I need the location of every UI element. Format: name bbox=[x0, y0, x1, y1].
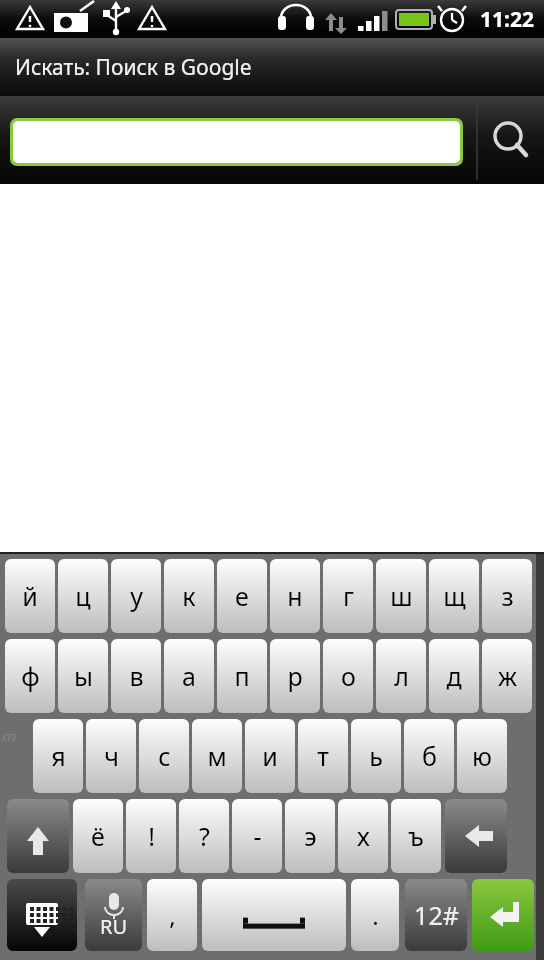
button[interactable]: й bbox=[5, 559, 55, 633]
staticText: ю bbox=[472, 739, 492, 773]
button[interactable]: у bbox=[111, 559, 161, 633]
button[interactable]: з bbox=[482, 559, 532, 633]
button[interactable]: ! bbox=[126, 799, 176, 873]
button[interactable]: Backspace bbox=[445, 799, 507, 873]
staticText: з bbox=[501, 579, 514, 613]
staticText: ъ bbox=[408, 819, 424, 853]
button[interactable]: ь bbox=[351, 719, 401, 793]
staticText: е bbox=[235, 579, 249, 613]
button[interactable]: ж bbox=[482, 639, 532, 713]
button[interactable]: н bbox=[270, 559, 320, 633]
button[interactable]: - bbox=[232, 799, 282, 873]
staticText: ф bbox=[21, 659, 40, 693]
staticText: м bbox=[207, 739, 227, 773]
button[interactable]: Shift bbox=[7, 799, 69, 873]
button[interactable]: щ bbox=[429, 559, 479, 633]
button[interactable]: ц bbox=[58, 559, 108, 633]
button[interactable]: я bbox=[33, 719, 83, 793]
staticText: , bbox=[169, 899, 176, 932]
staticText: у bbox=[130, 579, 143, 613]
staticText: ! bbox=[148, 819, 155, 853]
staticText: в bbox=[129, 659, 144, 693]
staticText: XT9 bbox=[2, 732, 16, 743]
staticText: 11:22 bbox=[480, 5, 534, 34]
staticText: г bbox=[343, 579, 354, 613]
button[interactable]: с bbox=[139, 719, 189, 793]
button[interactable]: и bbox=[245, 719, 295, 793]
button[interactable]: м bbox=[192, 719, 242, 793]
staticText: я bbox=[51, 739, 66, 773]
button[interactable]: е bbox=[217, 559, 267, 633]
button[interactable]: л bbox=[376, 639, 426, 713]
staticText: с bbox=[158, 739, 171, 773]
button[interactable]: г bbox=[323, 559, 373, 633]
staticText: ш bbox=[390, 579, 413, 613]
button[interactable]: т bbox=[298, 719, 348, 793]
staticText: и bbox=[262, 739, 278, 773]
staticText: к bbox=[182, 579, 196, 613]
staticText: RU bbox=[100, 913, 128, 940]
button[interactable]: 12# bbox=[405, 879, 467, 951]
button[interactable]: э bbox=[285, 799, 335, 873]
staticText: Искать: Поиск в Google bbox=[15, 53, 252, 82]
button[interactable]: в bbox=[111, 639, 161, 713]
button[interactable]: к bbox=[164, 559, 214, 633]
staticText: ь bbox=[369, 739, 383, 773]
button[interactable]: ы bbox=[58, 639, 108, 713]
staticText: ё bbox=[91, 819, 105, 853]
staticText: л bbox=[394, 659, 409, 693]
staticText: . bbox=[372, 899, 379, 932]
button[interactable]: Voice input RU bbox=[85, 879, 142, 951]
button[interactable]: Space bbox=[202, 879, 346, 951]
staticText: т bbox=[317, 739, 329, 773]
staticText: щ bbox=[443, 579, 466, 613]
button[interactable]: п bbox=[217, 639, 267, 713]
staticText: р bbox=[287, 659, 303, 693]
staticText: ы bbox=[74, 659, 93, 693]
staticText: о bbox=[341, 659, 356, 693]
button[interactable]: д bbox=[429, 639, 479, 713]
button[interactable]: Enter bbox=[472, 879, 534, 951]
staticText: п bbox=[234, 659, 250, 693]
button[interactable]: б bbox=[404, 719, 454, 793]
staticText: э bbox=[304, 819, 317, 853]
button[interactable]: о bbox=[323, 639, 373, 713]
staticText: ? bbox=[199, 819, 210, 853]
staticText: ж bbox=[498, 659, 517, 693]
button[interactable]: ш bbox=[376, 559, 426, 633]
staticText: н bbox=[287, 579, 303, 613]
button[interactable]: , bbox=[147, 879, 197, 951]
staticText: ц bbox=[75, 579, 91, 613]
staticText: 12# bbox=[414, 898, 459, 932]
staticText: а bbox=[182, 659, 196, 693]
button[interactable] bbox=[13, 121, 460, 163]
staticText: - bbox=[253, 819, 262, 853]
button[interactable]: ё bbox=[73, 799, 123, 873]
staticText: д bbox=[446, 659, 462, 693]
staticText: б bbox=[422, 739, 437, 773]
button[interactable]: ф bbox=[5, 639, 55, 713]
button[interactable]: а bbox=[164, 639, 214, 713]
staticText: ч bbox=[104, 739, 119, 773]
staticText: х bbox=[357, 819, 370, 853]
button[interactable]: ю bbox=[457, 719, 507, 793]
button[interactable]: Hide keyboard bbox=[7, 879, 77, 951]
button[interactable]: . bbox=[351, 879, 399, 951]
staticText: й bbox=[22, 579, 38, 613]
button[interactable]: ч bbox=[86, 719, 136, 793]
button[interactable]: ? bbox=[179, 799, 229, 873]
button[interactable]: х bbox=[338, 799, 388, 873]
button[interactable]: Search bbox=[478, 96, 544, 184]
button[interactable]: ъ bbox=[391, 799, 441, 873]
button[interactable]: р bbox=[270, 639, 320, 713]
